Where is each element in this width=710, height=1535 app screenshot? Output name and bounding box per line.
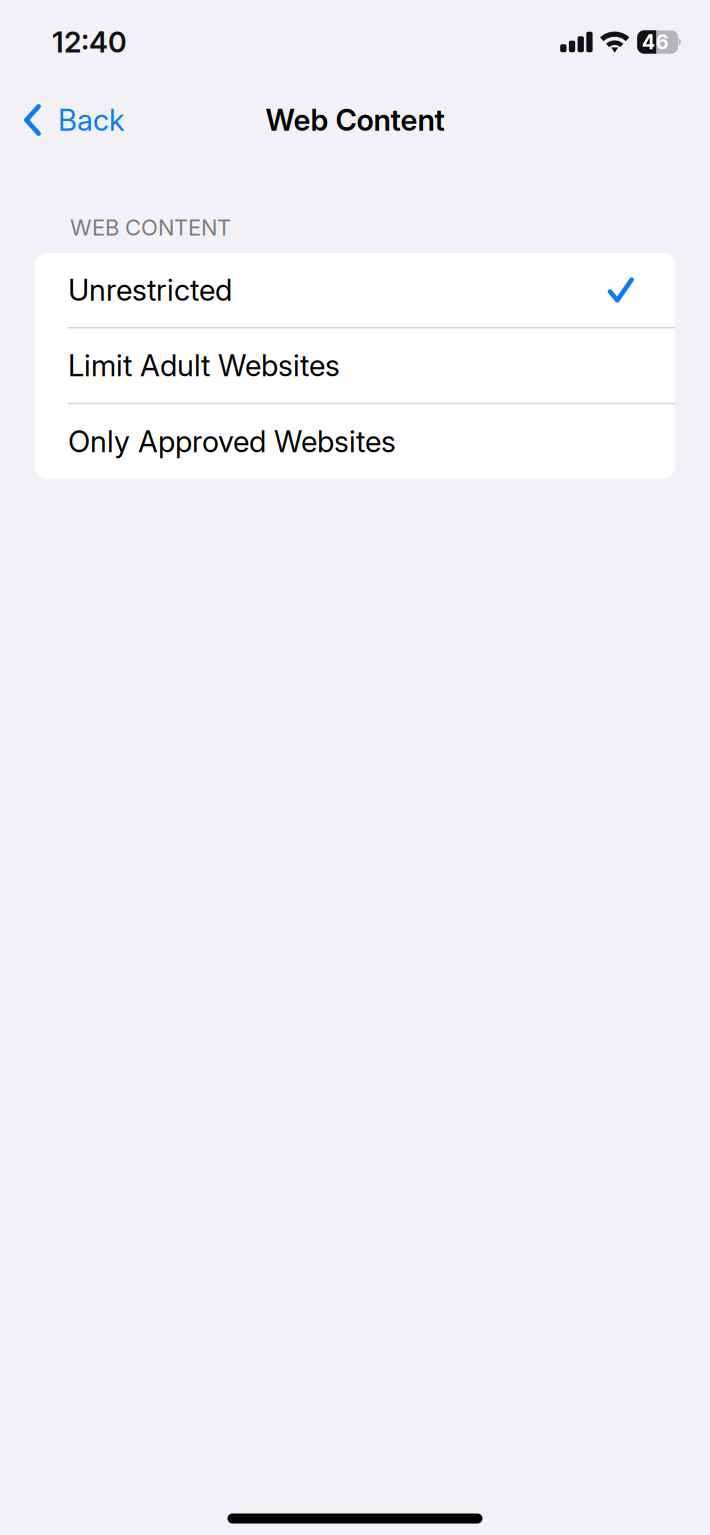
staticText: Unrestricted (68, 272, 232, 308)
staticText: Back (58, 102, 125, 138)
staticText: Only Approved Websites (68, 424, 396, 459)
button[interactable]: Unrestricted (35, 253, 675, 327)
staticText: 12:40 (52, 25, 127, 59)
staticText: 46 (642, 30, 669, 54)
staticText: Web Content (265, 102, 444, 138)
staticText: WEB CONTENT (70, 214, 231, 241)
button[interactable]: Back (0, 91, 145, 149)
button[interactable]: Limit Adult Websites (35, 328, 675, 403)
staticText: Limit Adult Websites (68, 348, 340, 383)
button[interactable]: Only Approved Websites (35, 404, 675, 479)
